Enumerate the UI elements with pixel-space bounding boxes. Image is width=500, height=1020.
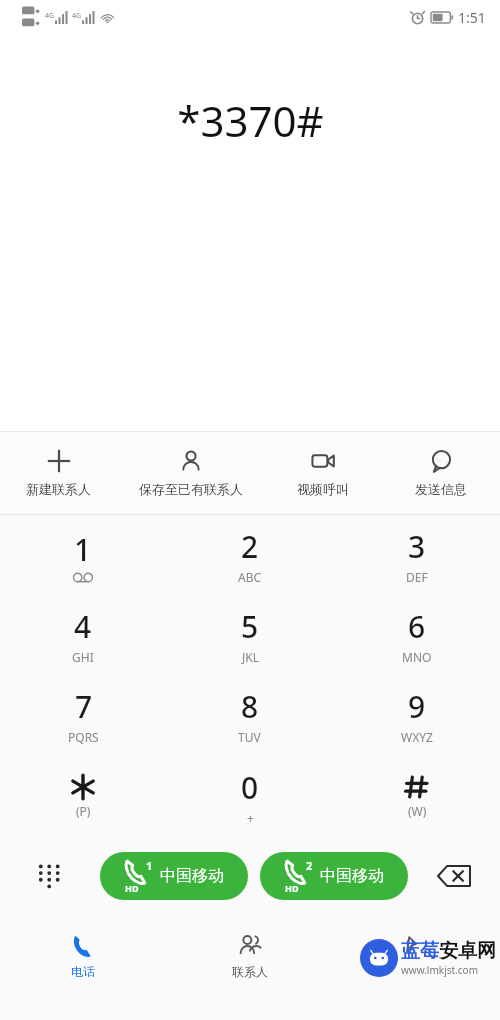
staticText: 4G [72,11,82,21]
staticText: JKL [242,649,259,665]
button[interactable]: 8 [166,675,333,756]
staticText: + [247,810,254,826]
staticText: 视频呼叫 [297,481,349,497]
staticText: ABC [238,569,262,585]
button[interactable]: Save to existing contact [117,443,264,503]
button[interactable]: 联系人 [166,915,333,997]
staticText: 安卓网 [439,939,496,963]
button[interactable]: 6 [333,595,500,675]
staticText: 中国移动 [320,866,384,886]
button[interactable]: 1 [100,852,248,900]
button[interactable]: 电话 [0,915,166,997]
staticText: 4G [45,11,55,21]
staticText: *3370# [177,92,324,149]
staticText: (P) [76,803,91,819]
button[interactable]: 0 [166,756,333,837]
button[interactable]: Video call [264,443,382,503]
staticText: HD [125,882,139,894]
button[interactable]: 7 [0,675,166,756]
staticText: 电话 [71,964,95,979]
button[interactable]: New contact [0,443,117,503]
staticText: 8 [241,686,259,727]
button[interactable]: Send message [382,443,500,503]
staticText: 3 [408,526,426,567]
button[interactable]: (W) [333,756,500,837]
staticText: 保存至已有联系人 [139,481,243,497]
staticText: www.lmkjst.com [401,963,478,977]
staticText: 9 [408,686,426,727]
staticText: 新建联系人 [26,481,91,497]
staticText: 中国移动 [160,866,224,886]
staticText: GHI [72,649,94,665]
staticText: 0 [241,767,259,808]
button[interactable]: Favorites [333,915,500,997]
staticText: HD [285,882,299,894]
button[interactable]: Backspace [408,845,500,907]
staticText: PQRS [68,729,99,745]
staticText: 7 [75,686,93,727]
button[interactable]: Hide keypad [0,845,100,907]
staticText: 6 [408,606,426,647]
button[interactable]: 3 [333,515,500,595]
button[interactable]: 5 [166,595,333,675]
button[interactable]: 2 [260,852,408,900]
staticText: (W) [408,803,427,819]
staticText: MNO [402,649,432,665]
staticText: 4 [74,606,92,647]
staticText: DEF [406,569,428,585]
staticText: 1 [74,529,92,570]
staticText: 5 [241,606,259,647]
staticText: 蓝莓 [401,939,439,963]
staticText: TUV [238,729,261,745]
staticText: 1 [146,858,153,873]
staticText: WXYZ [401,729,433,745]
staticText: 1:51 [458,8,486,27]
button[interactable]: (P) [0,756,166,837]
button[interactable]: 9 [333,675,500,756]
button[interactable]: 4 [0,595,166,675]
staticText: 联系人 [232,964,268,979]
staticText: 2 [306,858,313,873]
button[interactable]: 2 [166,515,333,595]
button[interactable]: 1 [0,515,166,595]
staticText: 2 [241,526,259,567]
staticText: 发送信息 [415,481,467,497]
